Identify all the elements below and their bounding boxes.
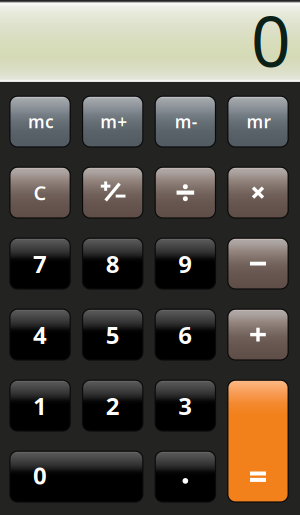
staticText: 1 bbox=[33, 390, 47, 422]
staticText: C bbox=[33, 179, 46, 206]
button[interactable]: 2 bbox=[83, 381, 142, 430]
button[interactable]: 3 bbox=[156, 381, 215, 430]
staticText: 5 bbox=[106, 319, 120, 351]
button[interactable]: Plus minus bbox=[83, 168, 142, 217]
staticText: mc bbox=[28, 110, 54, 133]
staticText: mr bbox=[246, 110, 271, 133]
staticText: m- bbox=[175, 110, 198, 133]
staticText: 9 bbox=[178, 248, 192, 280]
button[interactable]: 8 bbox=[83, 239, 142, 288]
button[interactable]: Decimal point bbox=[156, 452, 215, 501]
button[interactable]: Plus bbox=[228, 310, 287, 359]
staticText: 3 bbox=[178, 390, 192, 422]
staticText: 0 bbox=[251, 0, 291, 86]
staticText: 8 bbox=[106, 248, 120, 280]
button[interactable]: C bbox=[10, 168, 70, 217]
staticText: 7 bbox=[33, 248, 47, 280]
staticText: 6 bbox=[178, 319, 192, 351]
button[interactable]: Multiply bbox=[228, 168, 287, 217]
button[interactable]: 6 bbox=[156, 310, 215, 359]
button[interactable]: 4 bbox=[10, 310, 70, 359]
button[interactable]: mc bbox=[10, 97, 70, 146]
button[interactable]: m- bbox=[156, 97, 215, 146]
staticText: 2 bbox=[106, 390, 120, 422]
button[interactable]: Minus bbox=[228, 239, 287, 288]
button[interactable]: 1 bbox=[10, 381, 70, 430]
button[interactable]: 9 bbox=[156, 239, 215, 288]
staticText: 0 bbox=[33, 459, 47, 491]
button[interactable]: mr bbox=[228, 97, 287, 146]
button[interactable]: 0 bbox=[10, 452, 142, 501]
staticText: 4 bbox=[33, 319, 47, 351]
button[interactable]: Divide bbox=[156, 168, 215, 217]
button[interactable]: m+ bbox=[83, 97, 142, 146]
button[interactable]: 7 bbox=[10, 239, 70, 288]
staticText: m+ bbox=[100, 110, 127, 133]
button[interactable]: Equals bbox=[228, 381, 287, 501]
button[interactable]: 5 bbox=[83, 310, 142, 359]
